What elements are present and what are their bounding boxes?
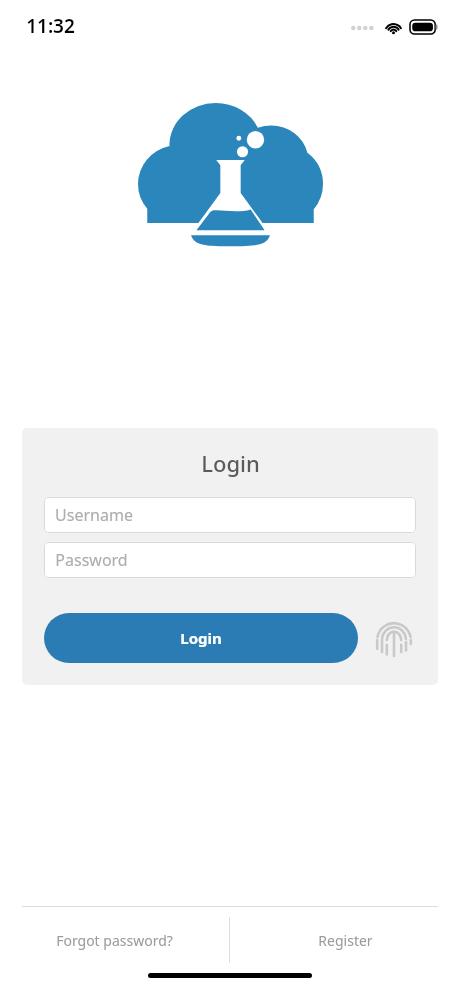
button[interactable]: Register [230, 907, 460, 973]
button[interactable]: Login [44, 613, 358, 663]
staticText: Login [201, 448, 260, 478]
staticText: 11:32 [26, 13, 75, 39]
staticText: Forgot password? [56, 931, 173, 950]
button[interactable]: Fingerprint login [372, 616, 416, 660]
button[interactable]: Password [44, 542, 416, 578]
button[interactable]: Username [44, 497, 416, 533]
staticText: Register [318, 931, 373, 950]
button[interactable]: Forgot password? [0, 907, 229, 973]
staticText: Password [55, 549, 128, 571]
staticText: Login [180, 628, 222, 648]
staticText: Username [55, 504, 133, 526]
